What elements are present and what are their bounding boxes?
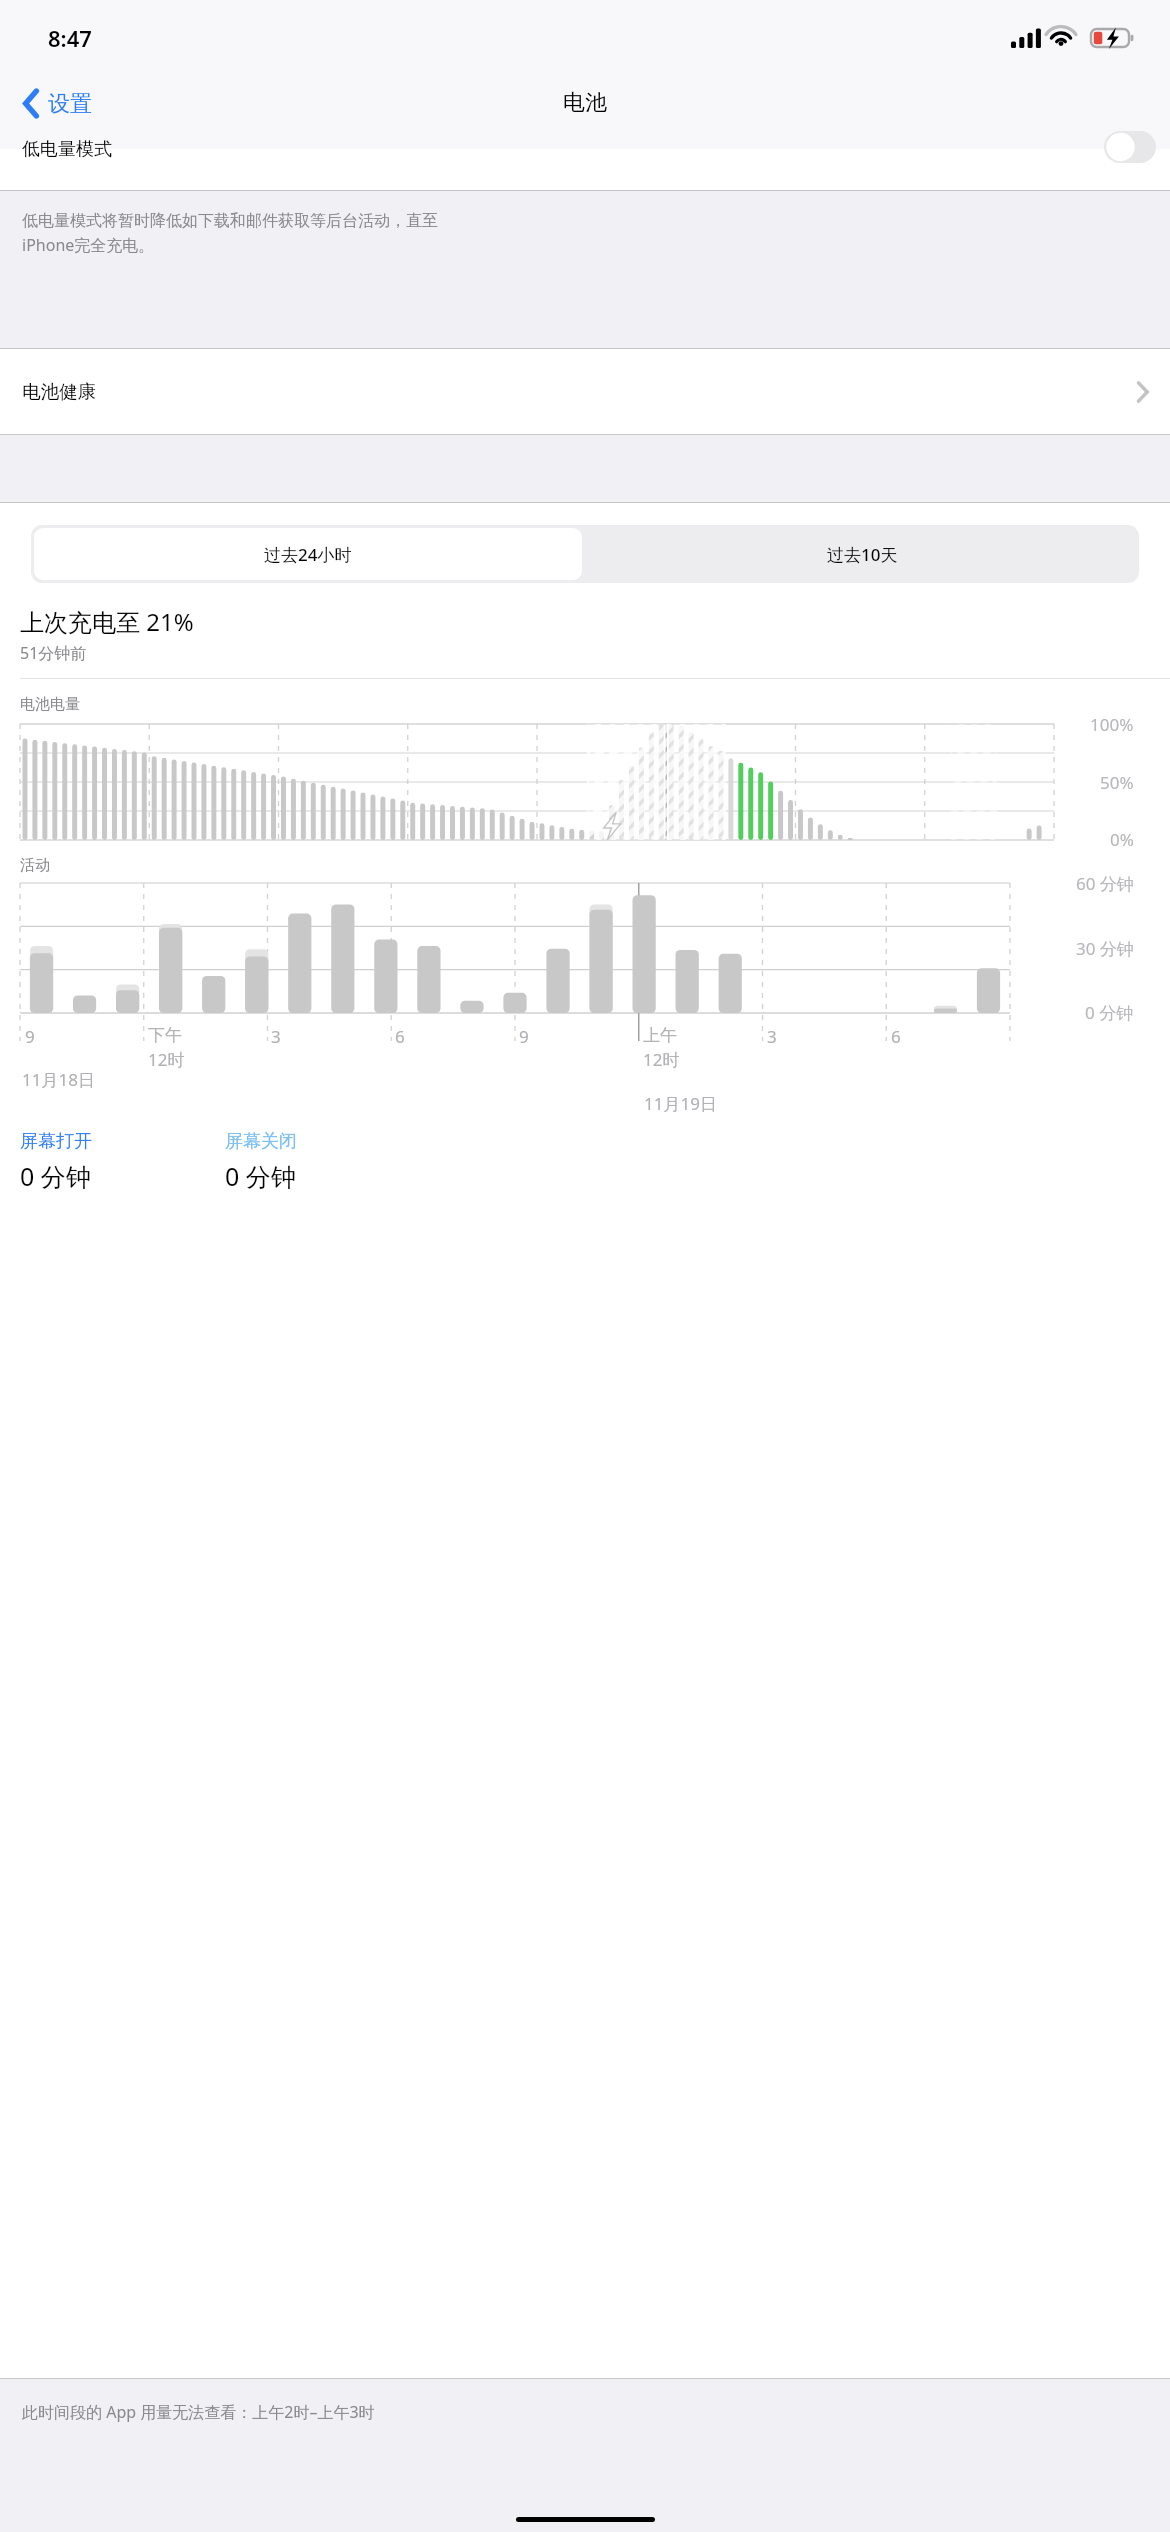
button[interactable]: 屏幕打开 [20, 1130, 225, 1193]
button[interactable]: 过去10天 [585, 525, 1139, 583]
button[interactable]: 低电量模式 [0, 149, 1170, 190]
staticText: 3 [767, 1025, 777, 1048]
staticText: 上次充电至 21% [20, 605, 194, 638]
staticText: 100% [1090, 713, 1134, 736]
staticText: 51分钟前 [20, 642, 87, 664]
staticText: 0 分钟 [225, 1159, 296, 1193]
button[interactable]: 过去24小时 [34, 528, 582, 580]
staticText: 11月18日 [22, 1068, 95, 1091]
staticText: 电池健康 [22, 380, 96, 403]
staticText: 0 分钟 [20, 1159, 91, 1193]
staticText: 低电量模式 [22, 138, 112, 161]
staticText: 9 [519, 1025, 529, 1048]
staticText: 50% [1100, 771, 1134, 794]
staticText: 60 分钟 [1076, 872, 1134, 895]
staticText: 此时间段的 App 用量无法查看：上午2时–上午3时 [22, 2401, 375, 2423]
button[interactable]: 电池健康 [0, 349, 1170, 434]
staticText: 电池电量 [20, 695, 80, 714]
staticText: 11月19日 [644, 1092, 717, 1115]
staticText: 过去24小时 [264, 543, 352, 566]
staticText: 下午 12时 [148, 1025, 185, 1071]
other: 低电量模式开关 [1104, 131, 1156, 163]
staticText: 9 [25, 1025, 35, 1048]
staticText: 电池 [563, 89, 607, 117]
staticText: 活动 [20, 856, 50, 875]
staticText: 0% [1110, 828, 1134, 851]
staticText: 设置 [48, 90, 92, 118]
button[interactable]: 设置 [16, 78, 98, 129]
staticText: 8:47 [48, 23, 92, 53]
staticText: 屏幕关闭 [225, 1130, 297, 1153]
staticText: 屏幕打开 [20, 1130, 92, 1153]
button[interactable]: 屏幕关闭 [225, 1130, 430, 1193]
staticText: 过去10天 [827, 543, 898, 566]
staticText: 30 分钟 [1076, 937, 1134, 960]
staticText: 6 [891, 1025, 901, 1048]
staticText: 3 [271, 1025, 281, 1048]
staticText: 低电量模式将暂时降低如下载和邮件获取等后台活动，直至 iPhone完全充电。 [22, 211, 438, 256]
staticText: 6 [395, 1025, 405, 1048]
staticText: 0 分钟 [1085, 1001, 1134, 1024]
staticText: 上午 12时 [643, 1025, 680, 1071]
